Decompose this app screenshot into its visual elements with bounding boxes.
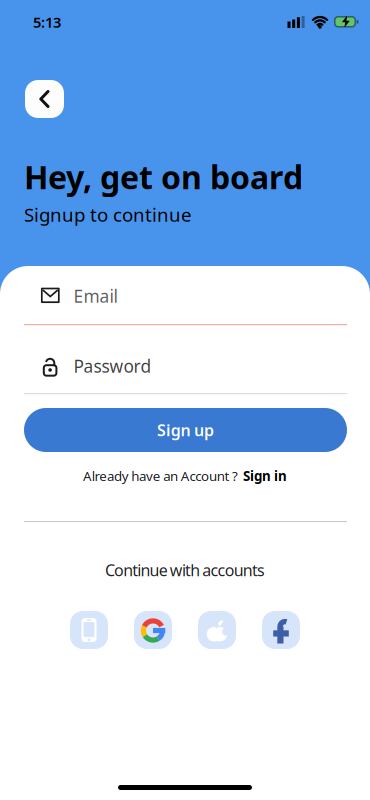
button[interactable]: Continue with Facebook <box>262 611 300 649</box>
staticText: Password <box>73 354 151 377</box>
button[interactable]: Sign up <box>24 408 347 452</box>
staticText: Hey, get on board <box>24 155 303 198</box>
button[interactable]: Continue with Google <box>134 611 172 649</box>
button[interactable]: Back <box>25 80 64 118</box>
staticText: Email <box>73 284 117 307</box>
staticText: Continue with accounts <box>105 559 265 581</box>
button[interactable]: Sign in <box>243 467 287 485</box>
staticText: Sign up <box>157 419 214 441</box>
button[interactable]: Continue with Apple <box>198 611 236 649</box>
staticText: Sign in <box>243 467 287 485</box>
staticText: Signup to continue <box>24 202 192 227</box>
staticText: 5:13 <box>33 12 61 32</box>
button[interactable]: Continue with phone <box>70 611 108 649</box>
staticText: Already have an Account ? <box>83 467 238 485</box>
